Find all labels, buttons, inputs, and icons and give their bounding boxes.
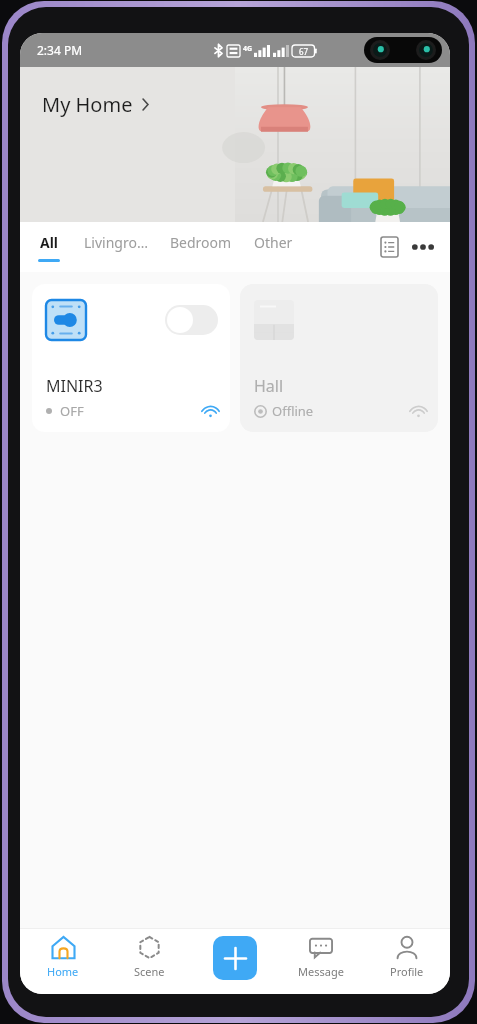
staticText: Scene [134, 964, 165, 979]
button[interactable]: Home [20, 934, 106, 994]
staticText: OFF [60, 402, 84, 420]
button[interactable]: Hall [240, 284, 438, 432]
staticText: 67 [299, 46, 309, 57]
staticText: Livingro… [84, 233, 148, 252]
staticText: Message [298, 964, 344, 979]
staticText: Profile [390, 964, 424, 979]
staticText: Bedroom [170, 233, 232, 252]
button[interactable]: Power toggle [32, 284, 230, 432]
button[interactable]: Add device [213, 936, 257, 980]
button[interactable]: Bedroom [170, 222, 232, 272]
staticText: Other [254, 233, 293, 252]
staticText: My Home [42, 91, 133, 118]
button[interactable]: Power toggle [165, 305, 218, 335]
staticText: All [40, 233, 59, 252]
staticText: 4G [243, 44, 253, 54]
button[interactable]: List view [372, 230, 406, 264]
staticText: MINIR3 [46, 375, 103, 397]
button[interactable]: Message [278, 934, 364, 994]
staticText: Hall [254, 375, 284, 397]
button[interactable]: Profile [364, 934, 450, 994]
button[interactable]: More options [406, 230, 440, 264]
button[interactable]: Other [254, 222, 293, 272]
button[interactable]: All [38, 222, 60, 272]
staticText: Home [47, 964, 79, 979]
staticText: Offline [272, 402, 314, 420]
button[interactable]: Livingro… [84, 222, 148, 272]
button[interactable]: Scene [106, 934, 192, 994]
staticText: 2:34 PM [37, 42, 83, 58]
